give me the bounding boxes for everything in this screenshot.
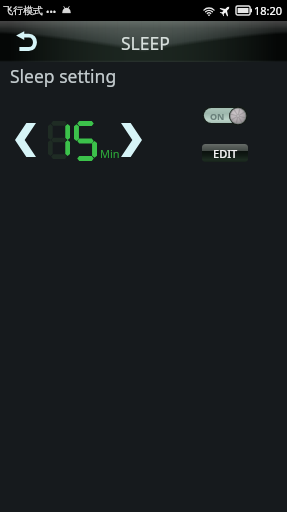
button[interactable]: Increase: [114, 117, 148, 163]
button[interactable]: Sleep on: [202, 106, 248, 125]
staticText: Sleep setting: [10, 64, 117, 88]
staticText: 飞行模式: [3, 4, 43, 17]
staticText: SLEEP: [121, 31, 170, 55]
staticText: 18:20: [254, 3, 283, 18]
button[interactable]: EDIT: [202, 144, 248, 162]
staticText: •••: [46, 5, 57, 17]
staticText: Min: [100, 146, 120, 161]
button[interactable]: Decrease: [8, 117, 42, 163]
staticText: ON: [210, 110, 225, 122]
staticText: EDIT: [213, 146, 238, 161]
button[interactable]: Back: [4, 23, 45, 58]
